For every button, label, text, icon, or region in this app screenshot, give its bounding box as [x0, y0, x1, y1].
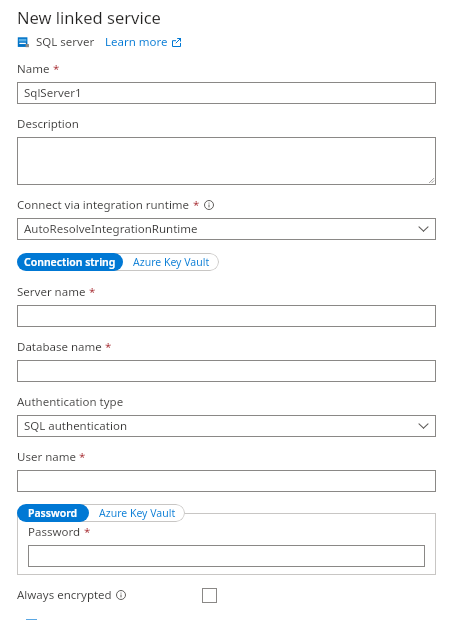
button[interactable]: SQL authentication: [17, 415, 436, 437]
button[interactable]: Connection string: [17, 253, 123, 271]
button[interactable]: Azure Key Vault: [53, 504, 185, 522]
staticText: Connect via integration runtime: [17, 197, 190, 213]
staticText: Description: [17, 116, 79, 132]
button[interactable]: [17, 305, 436, 327]
staticText: Learn more: [105, 34, 168, 50]
button[interactable]: Azure Key Vault: [70, 253, 219, 271]
staticText: Password: [28, 506, 78, 520]
staticText: Authentication type: [17, 394, 124, 410]
staticText: *: [84, 524, 91, 540]
button[interactable]: [17, 470, 436, 492]
staticText: *: [53, 61, 60, 77]
button[interactable]: Password: [17, 504, 89, 522]
button[interactable]: AutoResolveIntegrationRuntime: [17, 218, 436, 240]
staticText: Additional connection properties: [17, 619, 194, 620]
button[interactable]: [28, 545, 425, 567]
staticText: AutoResolveIntegrationRuntime: [24, 221, 198, 237]
button[interactable]: SqlServer1: [17, 82, 436, 104]
staticText: SQL server: [36, 34, 95, 50]
staticText: Always encrypted: [17, 587, 112, 603]
staticText: *: [79, 449, 86, 465]
staticText: Azure Key Vault: [133, 255, 210, 269]
staticText: Password: [28, 524, 81, 540]
staticText: Azure Key Vault: [99, 506, 176, 520]
staticText: SqlServer1: [24, 85, 82, 101]
staticText: *: [89, 284, 96, 300]
staticText: New linked service: [17, 6, 161, 28]
staticText: Connection string: [24, 255, 116, 269]
staticText: Server name: [17, 284, 86, 300]
button[interactable]: [17, 137, 436, 185]
staticText: *: [105, 339, 112, 355]
staticText: SQL authentication: [24, 418, 127, 434]
staticText: User name: [17, 449, 76, 465]
button[interactable]: Always encrypted: [17, 587, 436, 603]
button[interactable]: [17, 360, 436, 382]
staticText: Name: [17, 61, 50, 77]
button[interactable]: Learn more: [105, 34, 181, 50]
staticText: *: [193, 197, 200, 213]
staticText: Database name: [17, 339, 102, 355]
